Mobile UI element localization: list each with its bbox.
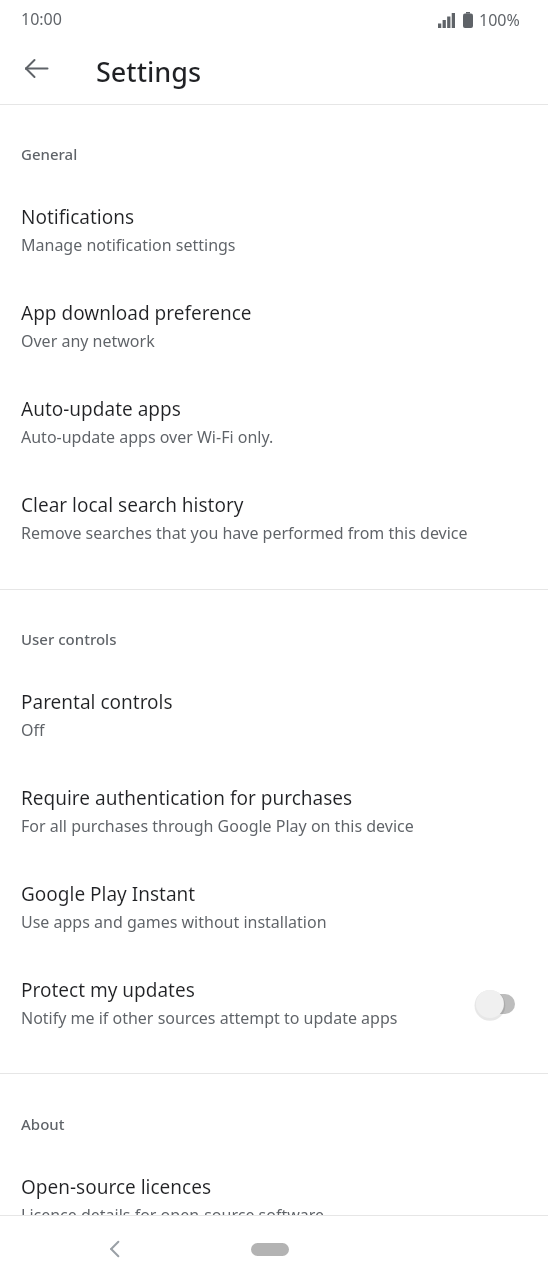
button[interactable]: Back (91, 1225, 139, 1273)
staticText: Clear local search history (21, 492, 244, 518)
staticText: Open-source licences (21, 1174, 212, 1200)
button[interactable] (0, 281, 548, 363)
button[interactable] (0, 1155, 548, 1215)
staticText: App download preference (21, 300, 252, 326)
staticText: Off (21, 719, 45, 741)
button[interactable] (0, 185, 548, 267)
button[interactable] (0, 862, 548, 944)
staticText: Notifications (21, 204, 135, 230)
staticText: 100% (479, 9, 520, 31)
button[interactable]: Home (251, 1243, 289, 1256)
staticText: Remove searches that you have performed … (21, 522, 468, 544)
staticText: Auto-update apps over Wi-Fi only. (21, 426, 274, 448)
staticText: Use apps and games without installation (21, 911, 327, 933)
staticText: Protect my updates (21, 977, 195, 1003)
button[interactable] (0, 766, 548, 848)
button[interactable] (0, 377, 548, 459)
staticText: Licence details for open-source software (21, 1204, 325, 1226)
button[interactable] (0, 473, 548, 555)
staticText: General (21, 144, 78, 164)
button[interactable] (0, 670, 548, 752)
staticText: About (21, 1114, 65, 1134)
staticText: Auto-update apps (21, 396, 181, 422)
staticText: 10:00 (21, 8, 62, 30)
staticText: Require authentication for purchases (21, 785, 353, 811)
staticText: Over any network (21, 330, 155, 352)
staticText: Notify me if other sources attempt to up… (21, 1007, 398, 1029)
staticText: Google Play Instant (21, 881, 196, 907)
staticText: Parental controls (21, 689, 173, 715)
staticText: Manage notification settings (21, 234, 236, 256)
button[interactable]: Protect my updates (464, 982, 520, 1026)
staticText: Settings (96, 53, 202, 90)
staticText: For all purchases through Google Play on… (21, 815, 414, 837)
button[interactable]: Back (8, 40, 64, 96)
button[interactable] (0, 958, 548, 1040)
staticText: User controls (21, 629, 117, 649)
